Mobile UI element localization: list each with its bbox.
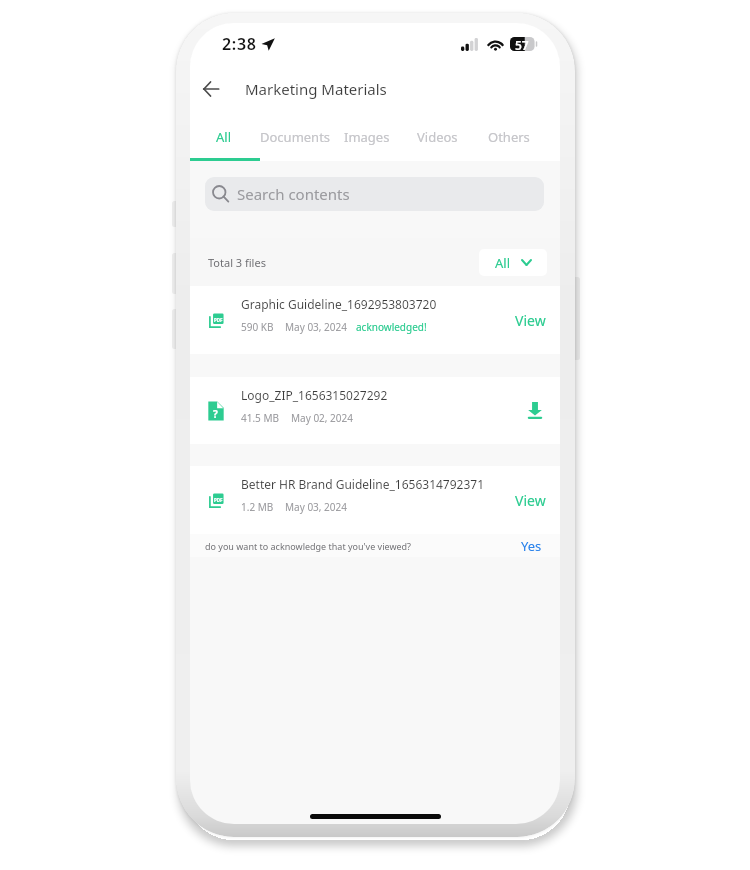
button[interactable]: ? (190, 377, 560, 444)
staticText: do you want to acknowledge that you've v… (205, 540, 411, 552)
staticText: 1.2 MB (241, 500, 274, 514)
staticText: Better HR Brand Guideline_1656314792371 (241, 476, 485, 492)
staticText: 57 (515, 37, 529, 51)
staticText: Documents (260, 128, 331, 146)
staticText: Marketing Materials (245, 79, 387, 99)
staticText: ? (213, 407, 218, 421)
staticText: PDF (214, 317, 223, 323)
staticText: Logo_ZIP_1656315027292 (241, 387, 388, 403)
button[interactable]: Yes (521, 537, 542, 555)
button[interactable]: PDF (190, 286, 560, 354)
staticText: May 03, 2024 (285, 320, 347, 334)
staticText: 41.5 MB (241, 411, 280, 425)
staticText: May 02, 2024 (291, 411, 353, 425)
button[interactable]: Back (192, 70, 230, 108)
button[interactable]: View (511, 485, 550, 516)
button[interactable]: Videos (402, 113, 473, 161)
button[interactable]: Search contents (205, 177, 544, 211)
button[interactable]: Others (473, 113, 544, 161)
staticText: Graphic Guideline_1692953803720 (241, 296, 437, 312)
staticText: PDF (214, 497, 223, 503)
staticText: Videos (417, 128, 458, 146)
button[interactable]: Download (524, 398, 550, 424)
button[interactable]: All (479, 249, 547, 276)
button[interactable]: Images (331, 113, 402, 161)
staticText: acknowledged! (356, 320, 427, 334)
staticText: Yes (521, 537, 542, 555)
button[interactable]: View (511, 305, 550, 336)
button[interactable]: Documents (260, 113, 331, 161)
staticText: 2:38 (222, 33, 257, 55)
button[interactable]: All (190, 113, 260, 161)
staticText: May 03, 2024 (285, 500, 347, 514)
staticText: All (216, 128, 232, 146)
staticText: View (515, 311, 546, 330)
staticText: Total 3 files (208, 255, 266, 270)
staticText: View (515, 491, 546, 510)
staticText: Search contents (237, 184, 350, 204)
staticText: Images (344, 128, 390, 146)
staticText: All (495, 254, 511, 272)
button[interactable]: PDF (190, 466, 560, 534)
staticText: Others (488, 128, 530, 146)
staticText: 590 KB (241, 320, 274, 334)
